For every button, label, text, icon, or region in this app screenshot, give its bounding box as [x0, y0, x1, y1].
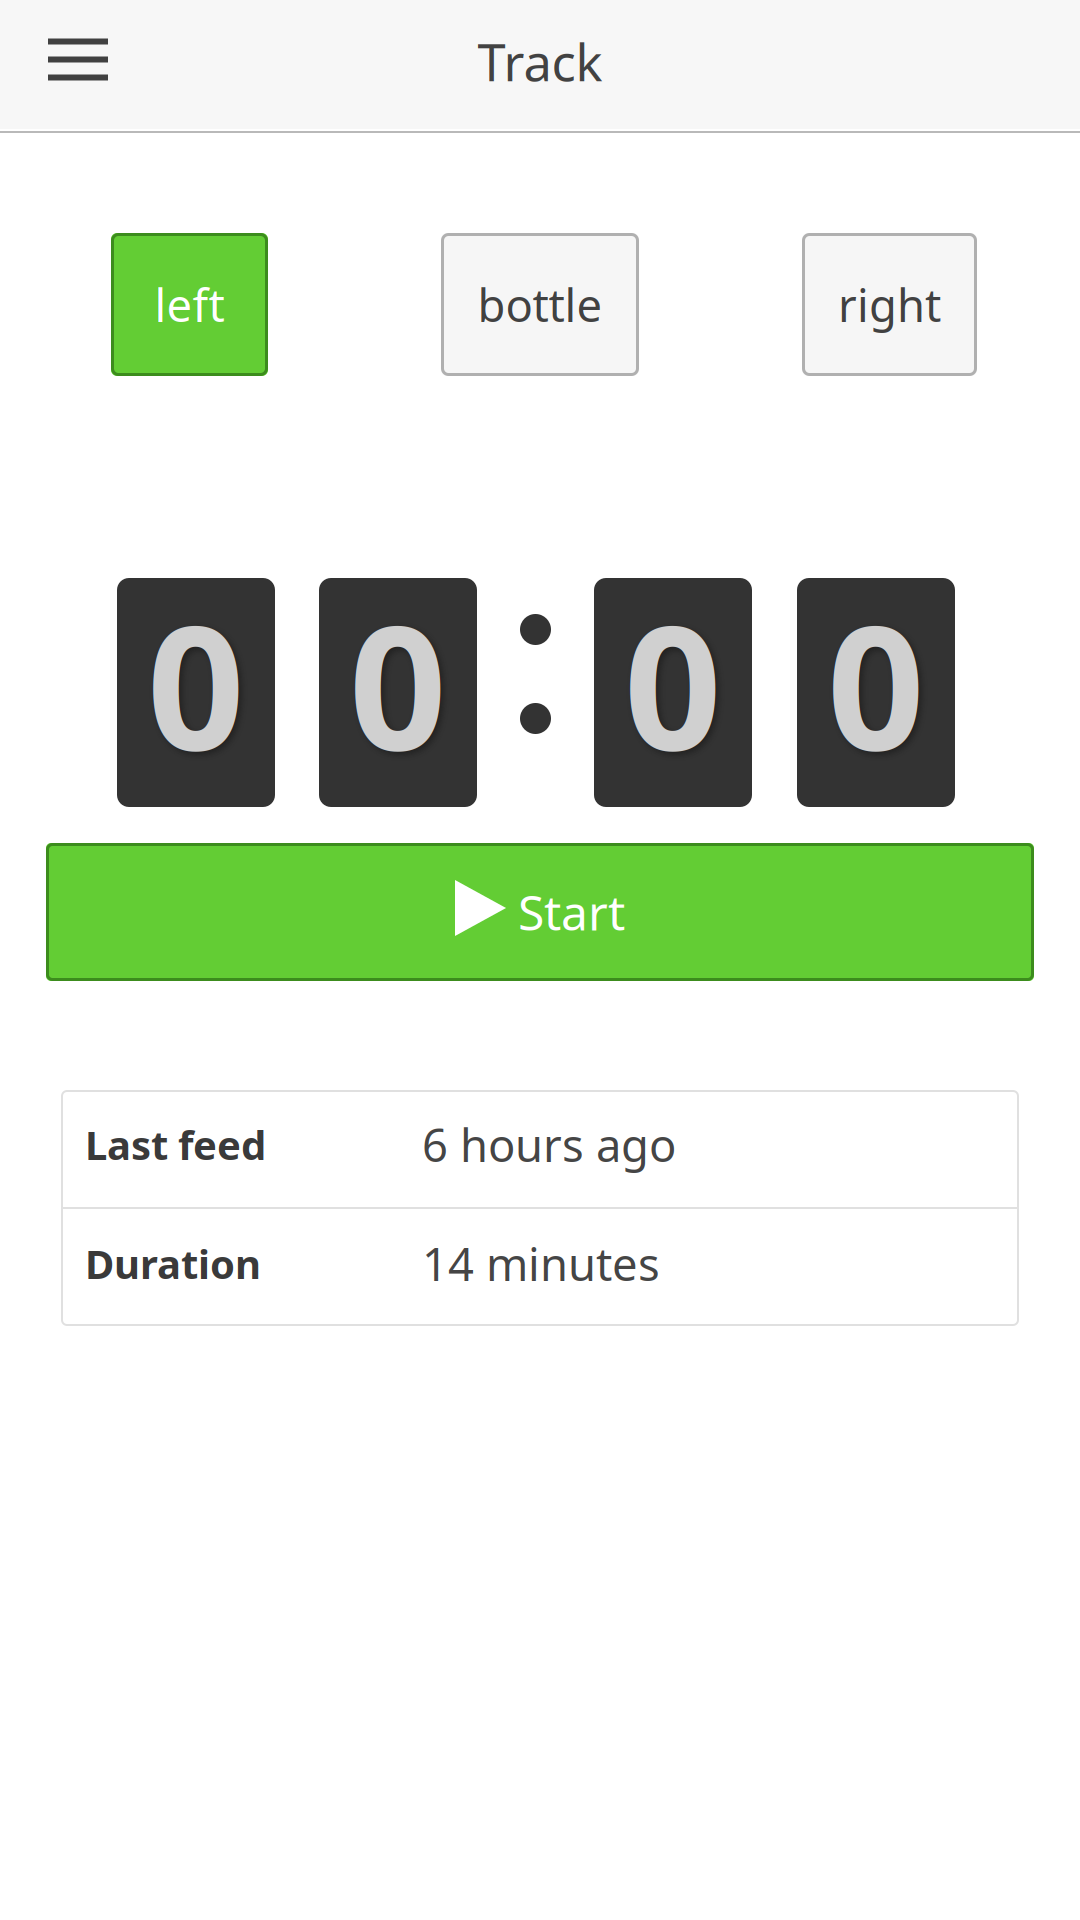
staticText: 6 hours ago	[422, 1114, 676, 1175]
staticText: Track	[477, 28, 602, 95]
staticText: Last feed	[85, 1118, 266, 1171]
button[interactable]: Start	[46, 843, 1034, 981]
staticText: 0	[147, 570, 245, 797]
button[interactable]: Menu	[0, 0, 132, 129]
button[interactable]: right	[802, 233, 977, 376]
staticText: 14 minutes	[422, 1233, 660, 1294]
staticText: 0	[349, 570, 447, 797]
staticText: Start	[518, 880, 625, 944]
staticText: Duration	[85, 1237, 261, 1290]
staticText: bottle	[477, 274, 602, 335]
button[interactable]: left	[111, 233, 268, 376]
staticText: 0	[827, 570, 925, 797]
staticText: left	[154, 274, 224, 335]
button[interactable]: bottle	[441, 233, 639, 376]
staticText: right	[838, 274, 941, 335]
staticText: 0	[624, 570, 722, 797]
